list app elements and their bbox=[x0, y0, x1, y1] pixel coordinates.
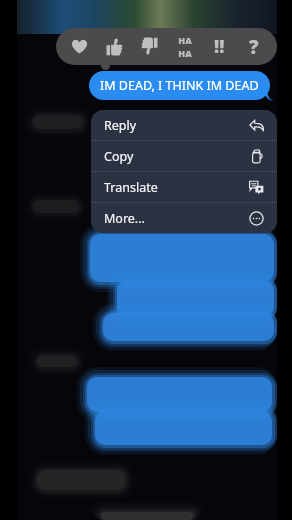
staticText: !! bbox=[214, 34, 225, 59]
staticText: More... bbox=[104, 210, 145, 227]
button[interactable]: More... bbox=[91, 203, 277, 233]
staticText: Reply bbox=[104, 117, 137, 134]
button[interactable]: Like bbox=[97, 28, 132, 65]
staticText: Copy bbox=[104, 148, 134, 165]
button[interactable]: Question bbox=[237, 28, 271, 65]
button[interactable]: Exclaim bbox=[202, 28, 237, 65]
button[interactable]: IM DEAD, I THINK IM DEAD bbox=[89, 71, 270, 100]
button[interactable]: Copy bbox=[91, 141, 277, 171]
button[interactable]: Love bbox=[62, 28, 97, 65]
staticText: HA bbox=[178, 47, 192, 59]
button[interactable]: Haha bbox=[167, 28, 202, 65]
staticText: ? bbox=[249, 34, 259, 60]
button[interactable]: Reply bbox=[91, 110, 277, 140]
staticText: HA bbox=[178, 34, 192, 46]
staticText: Translate bbox=[104, 179, 158, 196]
staticText: IM DEAD, I THINK IM DEAD bbox=[100, 77, 259, 94]
button[interactable]: Translate bbox=[91, 172, 277, 202]
button[interactable]: Dislike bbox=[132, 28, 167, 65]
